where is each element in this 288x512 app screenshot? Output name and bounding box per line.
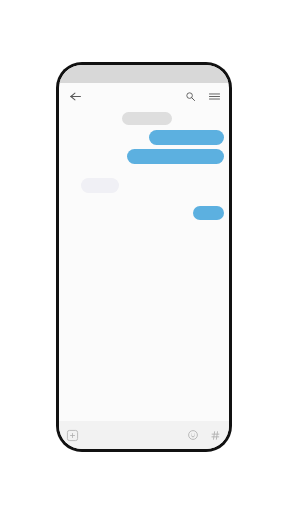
button[interactable] [122, 112, 172, 125]
button[interactable] [149, 130, 224, 145]
button[interactable] [193, 206, 224, 220]
button[interactable]: Back [65, 86, 85, 106]
button[interactable]: Menu [205, 87, 223, 105]
button[interactable] [127, 149, 224, 164]
button[interactable]: Add attachment [64, 427, 80, 443]
button[interactable]: Search [181, 87, 199, 105]
button[interactable]: Hashtag [207, 427, 223, 443]
button[interactable]: Emoji [185, 427, 201, 443]
